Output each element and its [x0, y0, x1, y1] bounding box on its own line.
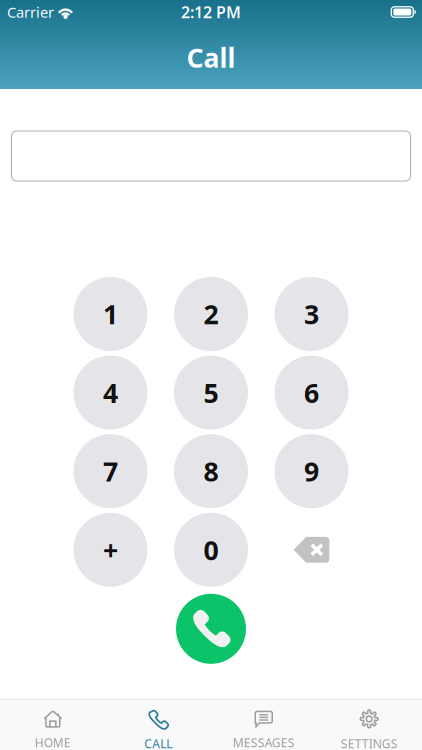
button[interactable]: 7	[73, 434, 147, 508]
button[interactable]: Delete	[274, 513, 348, 587]
staticText: 0	[203, 532, 218, 567]
staticText: +	[103, 532, 118, 567]
staticText: 9	[304, 453, 319, 489]
button[interactable]: Call	[176, 594, 246, 664]
staticText: 2:12 PM	[181, 1, 241, 23]
button[interactable]: SETTINGS	[316, 700, 422, 750]
button[interactable]: HOME	[0, 700, 105, 750]
staticText: 4	[103, 375, 118, 410]
staticText: 5	[203, 375, 218, 410]
staticText: 3	[304, 296, 319, 332]
button[interactable]: CALL	[105, 700, 211, 750]
staticText: 8	[203, 453, 218, 489]
staticText: 1	[103, 296, 118, 332]
button[interactable]: +	[73, 513, 147, 587]
button[interactable]: 1	[73, 277, 147, 351]
button[interactable]: 2	[174, 277, 248, 351]
button[interactable]: 6	[274, 356, 348, 430]
button[interactable]: 0	[174, 513, 248, 587]
button[interactable]: 5	[174, 356, 248, 430]
staticText: 2	[203, 296, 218, 332]
staticText: 7	[103, 453, 118, 489]
staticText: Call	[186, 40, 235, 75]
button[interactable]: 8	[174, 434, 248, 508]
button[interactable]: MESSAGES	[211, 700, 316, 750]
button[interactable]: 3	[274, 277, 348, 351]
staticText: HOME	[35, 734, 71, 750]
staticText: CALL	[144, 735, 172, 750]
staticText: MESSAGES	[233, 734, 295, 750]
staticText: Carrier	[7, 2, 54, 22]
staticText: SETTINGS	[341, 735, 398, 750]
button[interactable]: 9	[274, 434, 348, 508]
button[interactable]: 4	[73, 356, 147, 430]
staticText: 6	[304, 375, 319, 410]
